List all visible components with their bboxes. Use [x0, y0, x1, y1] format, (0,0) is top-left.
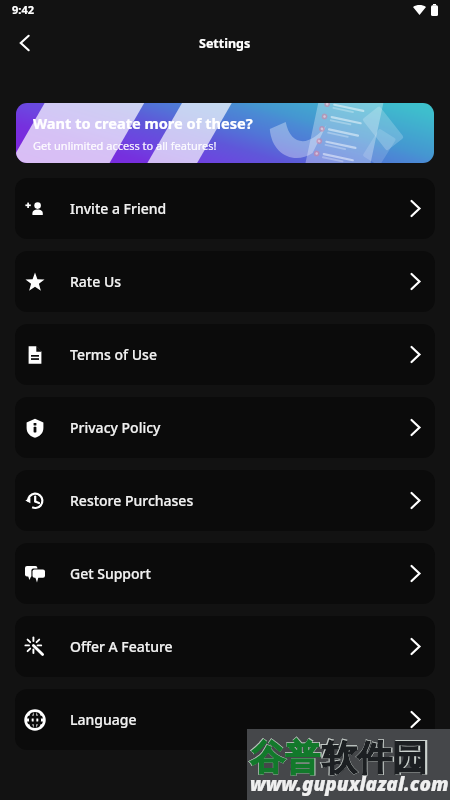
button[interactable]: Back — [7, 26, 41, 60]
button[interactable]: Get Support — [15, 543, 435, 604]
staticText: 谷普 — [249, 735, 321, 780]
staticText: Restore Purchases — [70, 491, 194, 510]
button[interactable]: Terms of Use — [15, 324, 435, 385]
button[interactable]: Privacy Policy — [15, 397, 435, 458]
staticText: Privacy Policy — [70, 418, 161, 437]
staticText: 谷普 — [250, 736, 320, 780]
staticText: 软件园 — [321, 735, 429, 780]
staticText: 9:42 — [12, 2, 34, 17]
button[interactable]: Restore Purchases — [15, 470, 435, 531]
button[interactable]: Offer A Feature — [15, 616, 435, 677]
staticText: www.gupuxlazal.com — [250, 771, 449, 797]
staticText: Language — [70, 710, 137, 729]
staticText: 软件园 — [322, 736, 427, 780]
button[interactable]: Want to create more of these? — [16, 103, 434, 163]
staticText: Offer A Feature — [70, 637, 173, 656]
staticText: Terms of Use — [70, 345, 157, 364]
button[interactable]: Language — [15, 689, 435, 750]
staticText: Invite a Friend — [70, 199, 167, 218]
staticText: Want to create more of these? — [33, 113, 253, 133]
staticText: Get unlimited access to all features! — [33, 138, 217, 153]
button[interactable]: Rate Us — [15, 251, 435, 312]
staticText: Get Support — [70, 564, 151, 583]
staticText: Settings — [199, 35, 251, 52]
button[interactable]: Invite a Friend — [15, 178, 435, 239]
staticText: Rate Us — [70, 272, 122, 291]
